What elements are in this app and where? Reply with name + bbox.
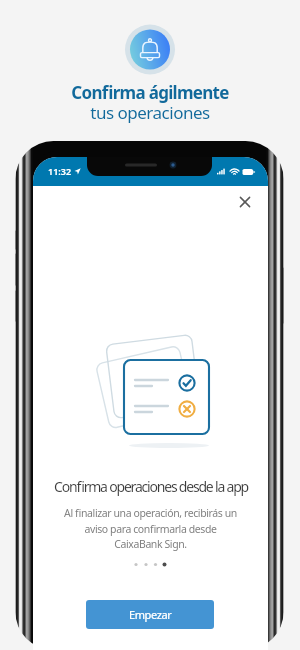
- button[interactable]: Empezar: [86, 600, 214, 629]
- staticText: Confirma operaciones desde la app: [54, 477, 248, 496]
- staticText: Empezar: [129, 607, 172, 622]
- staticText: 11:32: [48, 165, 72, 177]
- staticText: Al finalizar una operación, recibirás un…: [64, 506, 237, 551]
- button[interactable]: Close: [234, 191, 256, 213]
- staticText: tus operaciones: [90, 101, 210, 124]
- staticText: Confirma ágilmente: [71, 81, 229, 104]
